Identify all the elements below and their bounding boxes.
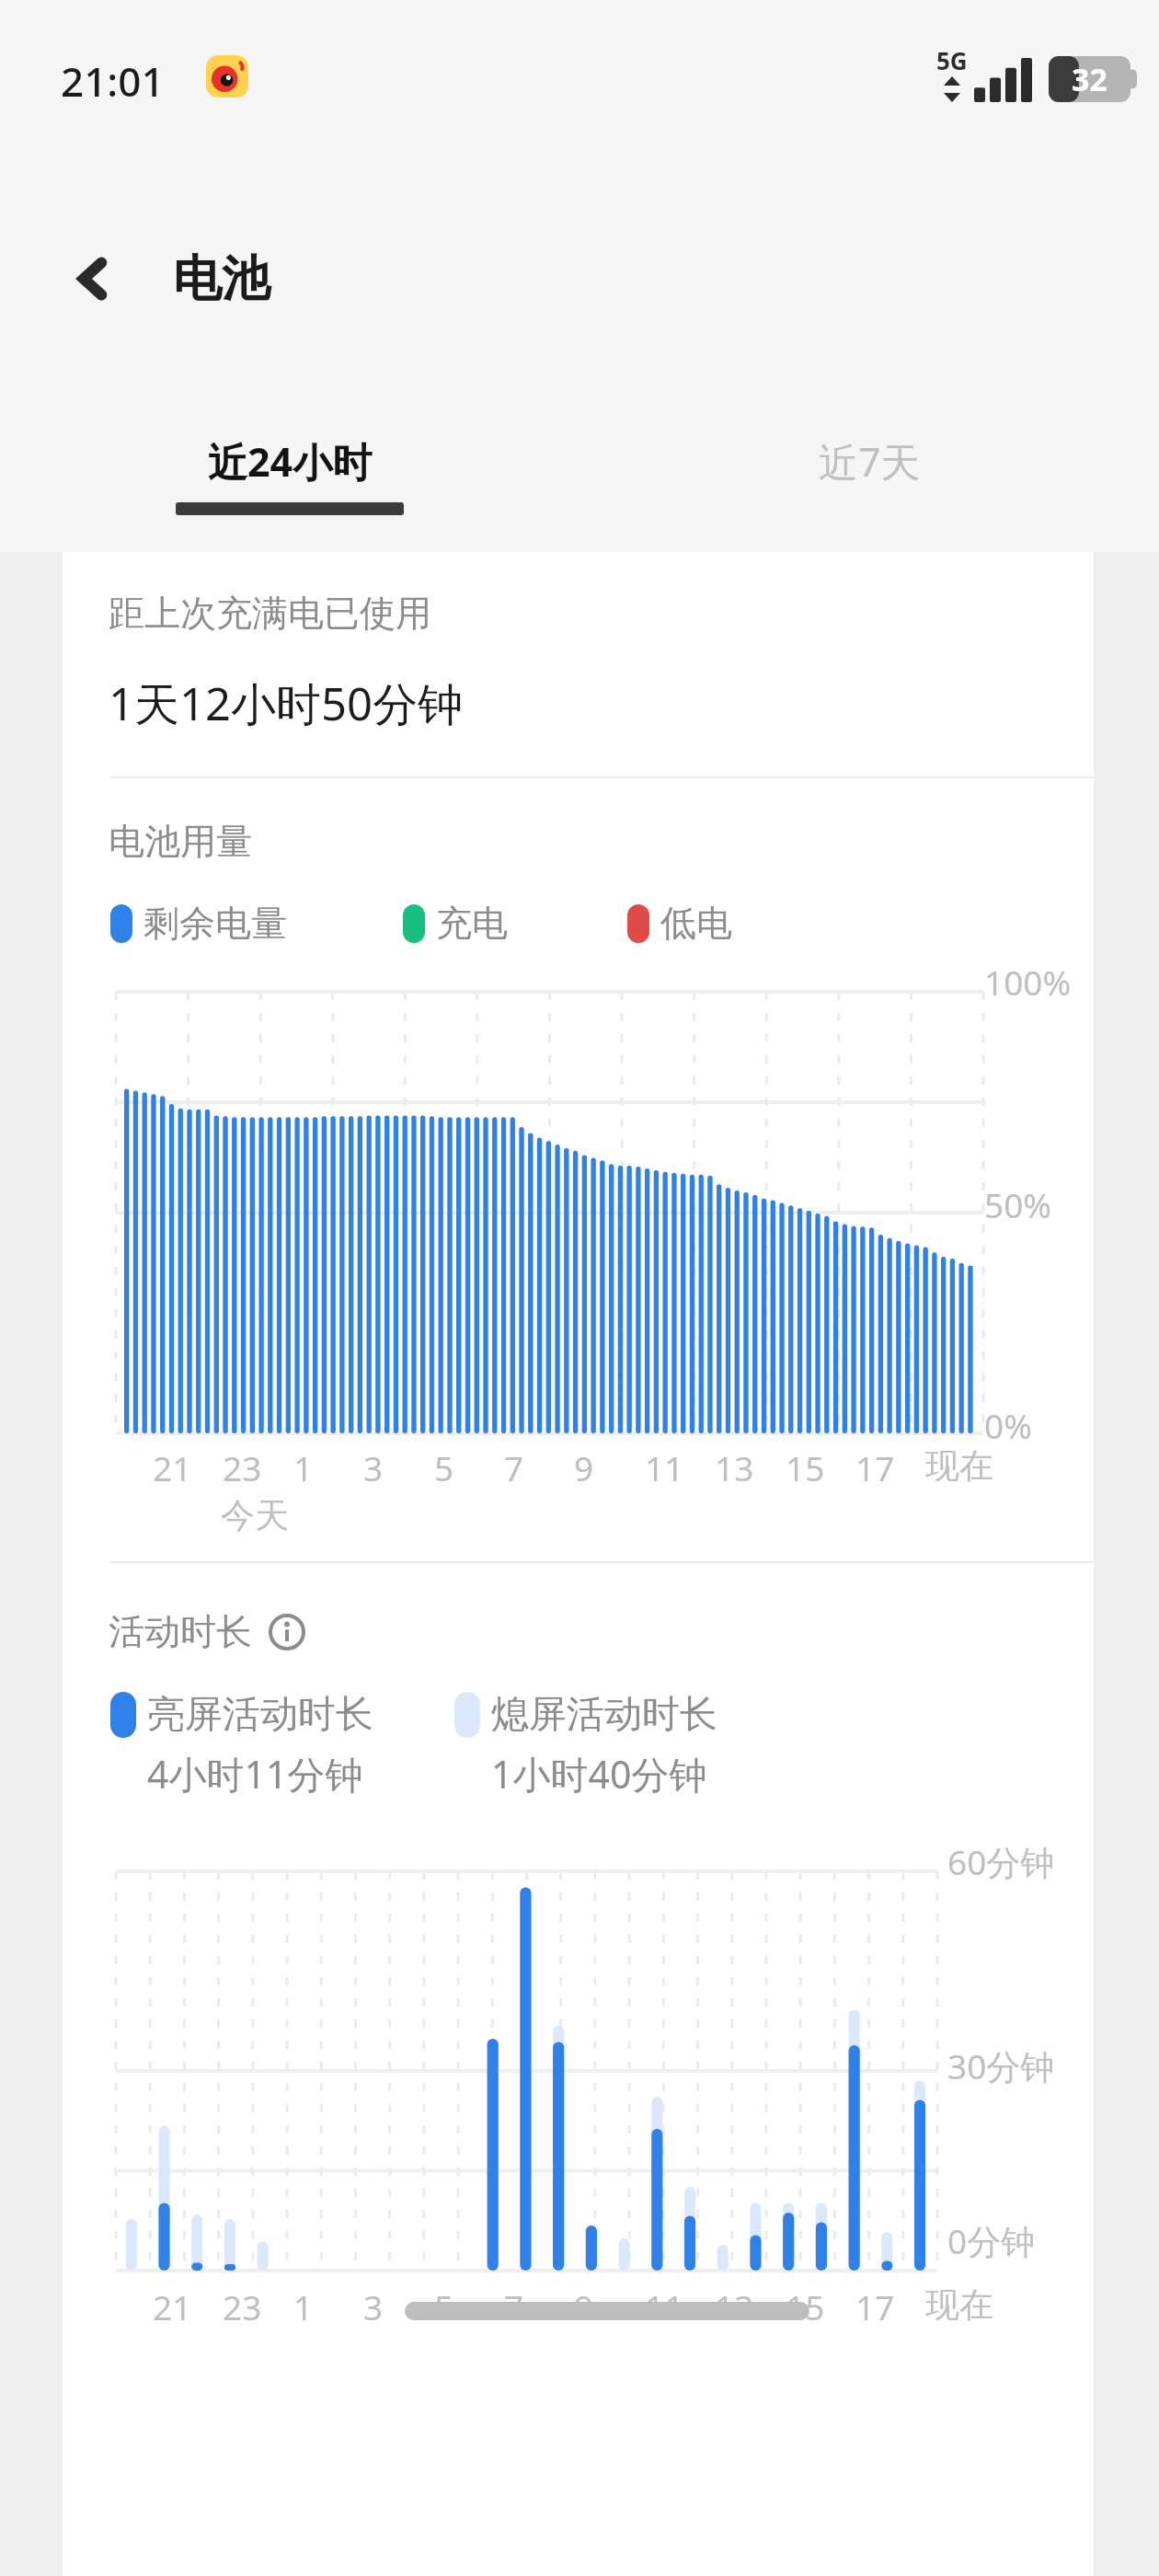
staticText: 5G <box>936 44 968 76</box>
staticText: 剩余电量 <box>143 901 287 946</box>
staticText: 32 <box>1072 58 1107 100</box>
staticText: 1 <box>293 2283 314 2329</box>
button[interactable]: 亮屏活动时长 <box>110 1691 373 1739</box>
staticText: 11 <box>645 2283 684 2329</box>
staticText: 23 <box>223 1444 262 1490</box>
staticText: 17 <box>855 1444 895 1490</box>
staticText: 熄屏活动时长 <box>491 1691 717 1739</box>
staticText: 3 <box>363 1444 384 1490</box>
staticText: 1天12小时50分钟 <box>109 673 464 734</box>
staticText: 现在 <box>925 1444 993 1488</box>
staticText: 亮屏活动时长 <box>147 1691 373 1739</box>
staticText: 9 <box>574 1444 594 1490</box>
staticText: 11 <box>645 1444 684 1490</box>
button[interactable]: Info <box>269 1614 305 1650</box>
button[interactable]: 充电 <box>403 901 508 946</box>
button[interactable]: 低电 <box>627 901 732 946</box>
staticText: 现在 <box>925 2283 993 2327</box>
staticText: 距上次充满电已使用 <box>109 591 431 636</box>
staticText: 活动时长 <box>109 1609 252 1654</box>
staticText: 7 <box>504 1444 524 1490</box>
staticText: 100% <box>984 959 1072 1005</box>
staticText: 低电 <box>660 901 732 946</box>
staticText: 电池 <box>173 248 270 310</box>
button[interactable]: 近24小时 <box>144 425 435 524</box>
staticText: 21 <box>153 1444 192 1490</box>
button[interactable]: 近7天 <box>787 425 952 498</box>
staticText: 充电 <box>436 901 508 946</box>
staticText: 1 <box>293 1444 314 1490</box>
staticText: 23 <box>223 2283 262 2329</box>
staticText: 15 <box>786 2283 825 2329</box>
staticText: 5 <box>434 2283 454 2329</box>
button[interactable]: Back <box>53 238 134 319</box>
staticText: 0分钟 <box>947 2217 1036 2264</box>
staticText: 5 <box>434 1444 454 1490</box>
staticText: 4小时11分钟 <box>147 1748 363 1800</box>
staticText: 0% <box>984 1402 1032 1448</box>
staticText: 9 <box>574 2283 594 2329</box>
staticText: 7 <box>504 2283 524 2329</box>
staticText: 电池用量 <box>109 819 252 864</box>
staticText: 3 <box>363 2283 384 2329</box>
button[interactable]: 剩余电量 <box>110 901 287 946</box>
staticText: 近24小时 <box>208 434 373 489</box>
staticText: 17 <box>855 2283 895 2329</box>
staticText: 今天 <box>221 1494 289 1537</box>
staticText: 50% <box>984 1181 1052 1227</box>
staticText: 21 <box>153 2283 192 2329</box>
staticText: 1小时40分钟 <box>491 1748 707 1800</box>
button[interactable]: 熄屏活动时长 <box>454 1691 717 1739</box>
staticText: 近7天 <box>819 434 921 489</box>
staticText: 15 <box>786 1444 825 1490</box>
staticText: 13 <box>715 2283 754 2329</box>
staticText: 60分钟 <box>947 1838 1055 1885</box>
staticText: 30分钟 <box>947 2042 1055 2089</box>
staticText: 13 <box>715 1444 754 1490</box>
staticText: 21:01 <box>61 53 165 109</box>
